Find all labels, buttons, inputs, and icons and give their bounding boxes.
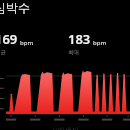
staticText: 시간(나무지) bbox=[52, 126, 78, 130]
staticText: bpm bbox=[93, 39, 107, 47]
staticText: 183 bbox=[68, 30, 91, 48]
staticText: 169 bbox=[0, 30, 18, 48]
button[interactable]: Heart rate chart bbox=[0, 60, 130, 115]
button[interactable]: 169 bbox=[0, 30, 65, 56]
staticText: bpm bbox=[20, 39, 34, 47]
button[interactable]: 183 bbox=[65, 30, 130, 56]
staticText: 최대 bbox=[68, 49, 79, 56]
staticText: 평균 bbox=[0, 49, 6, 56]
button[interactable]: 심박수 bbox=[0, 0, 130, 17]
staticText: 심박수 bbox=[0, 0, 30, 15]
